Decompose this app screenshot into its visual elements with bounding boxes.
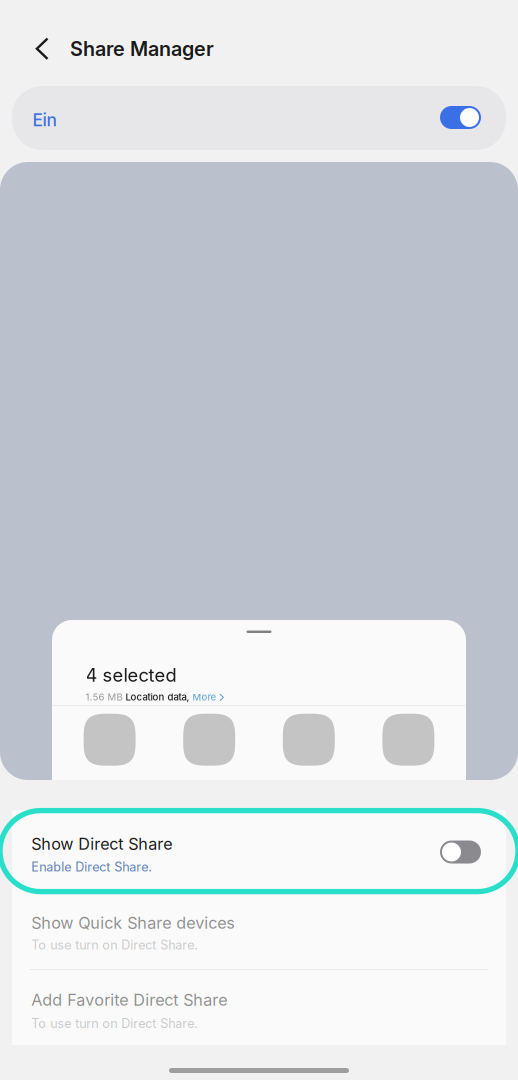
staticText: Show Quick Share devices <box>31 913 235 932</box>
staticText: More <box>192 691 216 703</box>
staticText: To use turn on Direct Share. <box>31 937 198 952</box>
staticText: Ein <box>32 109 56 130</box>
button[interactable]: Ein <box>12 86 506 150</box>
button[interactable]: Show Direct Share <box>12 810 506 890</box>
button[interactable]: Add Favorite Direct Share <box>12 970 506 1045</box>
staticText: Share Manager <box>70 37 214 61</box>
button[interactable]: Back <box>20 26 64 70</box>
staticText: 4 selected <box>85 664 176 686</box>
staticText: Enable Direct Share. <box>31 859 152 874</box>
staticText: Add Favorite Direct Share <box>31 990 227 1010</box>
staticText: Show Direct Share <box>31 834 172 853</box>
staticText: Location data, <box>125 691 192 703</box>
staticText: To use turn on Direct Share. <box>31 1016 198 1031</box>
staticText: 1.56 MB <box>85 691 125 703</box>
button[interactable]: Show Quick Share devices <box>12 890 506 969</box>
